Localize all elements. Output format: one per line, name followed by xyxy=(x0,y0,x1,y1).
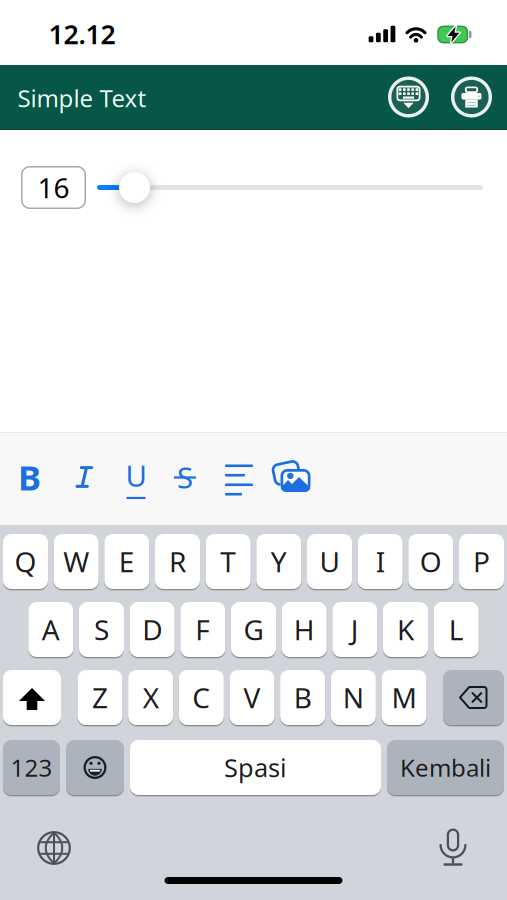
staticText: R xyxy=(169,543,186,580)
button[interactable]: O xyxy=(408,534,453,589)
button[interactable]: J xyxy=(332,602,377,657)
button[interactable]: N xyxy=(331,670,376,725)
button[interactable]: I xyxy=(358,534,403,589)
staticText: C xyxy=(192,679,210,716)
button[interactable]: S xyxy=(79,602,124,657)
button[interactable]: Font size xyxy=(21,166,86,209)
button[interactable]: Dictation xyxy=(423,816,483,876)
staticText: A xyxy=(42,611,60,648)
staticText: L xyxy=(449,611,464,648)
button[interactable]: P xyxy=(459,534,504,589)
staticText: K xyxy=(397,611,414,648)
button[interactable]: Strikethrough xyxy=(168,455,202,499)
button[interactable]: G xyxy=(231,602,276,657)
staticText: S xyxy=(94,611,109,648)
staticText: P xyxy=(473,543,490,580)
button[interactable]: Kembali xyxy=(387,740,504,795)
staticText: B xyxy=(18,454,41,500)
button[interactable]: M xyxy=(381,670,426,725)
button[interactable]: X xyxy=(128,670,173,725)
button[interactable]: T xyxy=(206,534,251,589)
button[interactable]: Print xyxy=(451,76,492,117)
staticText: M xyxy=(391,679,416,716)
button[interactable]: U xyxy=(307,534,352,589)
staticText: S xyxy=(177,457,193,496)
staticText: J xyxy=(351,611,359,648)
button[interactable]: E xyxy=(104,534,149,589)
button[interactable]: Z xyxy=(77,670,122,725)
button[interactable]: L xyxy=(434,602,479,657)
staticText: X xyxy=(143,679,159,716)
staticText: 123 xyxy=(10,752,52,783)
staticText: Spasi xyxy=(224,751,287,784)
staticText: U xyxy=(125,456,146,495)
staticText: V xyxy=(243,679,260,716)
staticText: E xyxy=(119,543,135,580)
staticText: Q xyxy=(14,543,36,580)
staticText: 16 xyxy=(37,169,69,206)
button[interactable]: Q xyxy=(3,534,48,589)
staticText: G xyxy=(243,611,263,648)
button[interactable]: Insert photo xyxy=(269,455,313,499)
button[interactable]: D xyxy=(130,602,175,657)
button[interactable]: Shift xyxy=(3,670,61,725)
staticText: B xyxy=(294,679,312,716)
button[interactable]: Text alignment xyxy=(220,458,258,502)
staticText: F xyxy=(195,611,210,648)
staticText: Simple Text xyxy=(17,82,146,114)
button[interactable]: B xyxy=(280,670,325,725)
button[interactable]: W xyxy=(54,534,99,589)
button[interactable]: Delete xyxy=(443,670,504,725)
staticText: I xyxy=(376,543,385,580)
button[interactable]: Spasi xyxy=(130,740,381,795)
staticText: N xyxy=(343,679,364,716)
button[interactable]: C xyxy=(179,670,224,725)
button[interactable]: Next keyboard xyxy=(24,818,84,878)
staticText: Kembali xyxy=(400,752,491,783)
staticText: Y xyxy=(271,543,287,580)
staticText: O xyxy=(420,543,442,580)
button[interactable]: A xyxy=(28,602,73,657)
staticText: W xyxy=(63,543,89,580)
button[interactable]: Numbers xyxy=(3,740,60,795)
staticText: Z xyxy=(92,679,108,716)
button[interactable]: Underline xyxy=(119,454,153,500)
button[interactable]: F xyxy=(180,602,225,657)
button[interactable]: Dismiss Keyboard xyxy=(388,76,429,117)
button[interactable]: V xyxy=(229,670,274,725)
button[interactable]: Font size slider xyxy=(97,166,483,209)
button[interactable]: Bold xyxy=(11,455,47,499)
button[interactable]: Italic xyxy=(68,455,100,499)
button[interactable]: Y xyxy=(256,534,301,589)
staticText: U xyxy=(319,543,339,580)
staticText: T xyxy=(220,543,236,580)
button[interactable]: Emoji xyxy=(66,740,124,795)
button[interactable]: R xyxy=(155,534,200,589)
staticText: H xyxy=(294,611,315,648)
staticText: D xyxy=(142,611,162,648)
staticText: 12.12 xyxy=(48,16,115,52)
button[interactable]: H xyxy=(282,602,327,657)
button[interactable]: K xyxy=(383,602,428,657)
